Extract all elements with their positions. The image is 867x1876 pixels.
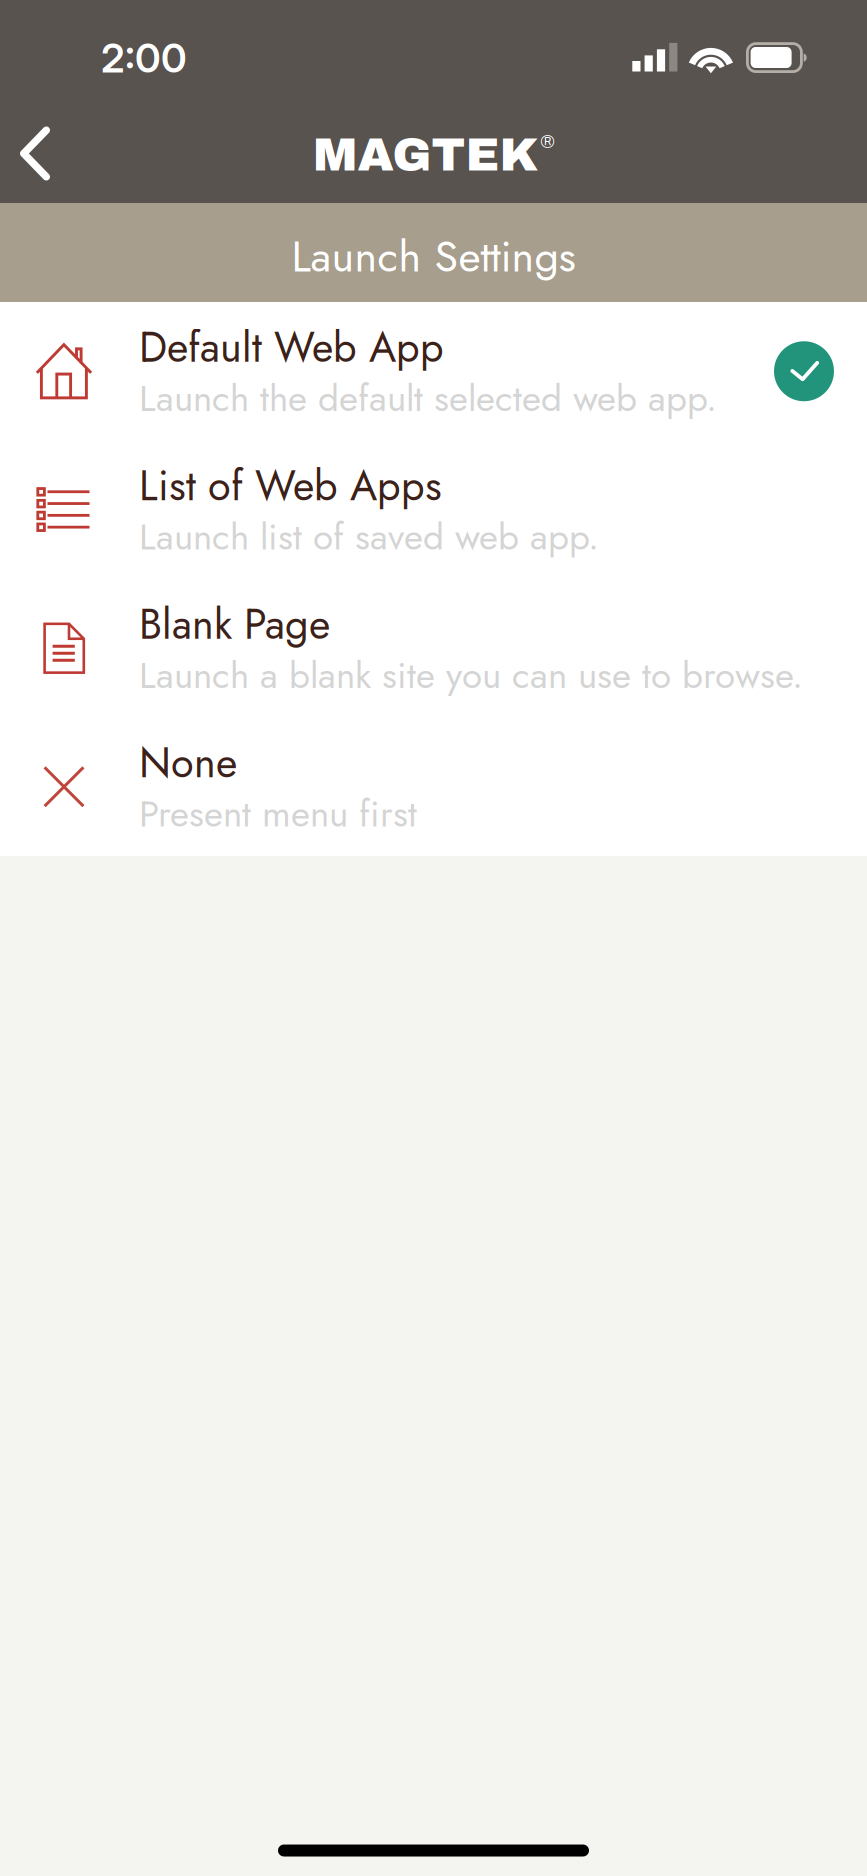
staticText: Blank Page bbox=[139, 594, 330, 654]
staticText: None bbox=[139, 733, 237, 793]
button[interactable]: Default Web App bbox=[0, 302, 867, 440]
staticText: Launch Settings bbox=[291, 225, 575, 287]
staticText: ® bbox=[540, 132, 554, 152]
staticText: 2:00 bbox=[101, 34, 187, 82]
button[interactable]: None bbox=[0, 717, 867, 856]
staticText: Launch list of saved web app. bbox=[139, 510, 599, 563]
staticText: Launch a blank site you can use to brows… bbox=[139, 648, 803, 702]
staticText: List of Web Apps bbox=[139, 456, 442, 516]
staticText: MAGTEK bbox=[312, 130, 538, 180]
staticText: Present menu first bbox=[139, 787, 417, 840]
staticText: Launch the default selected web app. bbox=[139, 371, 717, 425]
button[interactable]: List of Web Apps bbox=[0, 440, 867, 579]
button[interactable]: Back bbox=[0, 95, 70, 206]
staticText: Default Web App bbox=[139, 317, 444, 377]
button[interactable]: Blank Page bbox=[0, 579, 867, 717]
